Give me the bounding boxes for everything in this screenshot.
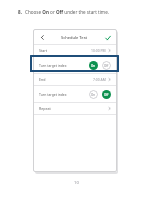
staticText: 10:00 PM (91, 48, 106, 53)
button[interactable]: Off (102, 61, 111, 70)
staticText: End (39, 77, 46, 82)
button[interactable]: Save (103, 33, 112, 42)
button[interactable]: Back (38, 33, 47, 42)
button[interactable]: On (89, 90, 98, 99)
staticText: On (91, 64, 96, 68)
button[interactable]: Off (102, 90, 111, 99)
staticText: 10 (74, 180, 79, 186)
button[interactable]: Repeat (34, 103, 116, 114)
staticText: Repeat (39, 106, 51, 111)
button[interactable]: End (34, 74, 116, 85)
staticText: Off (104, 64, 109, 68)
staticText: Schedule Test (61, 35, 88, 40)
staticText: Off (104, 93, 109, 97)
staticText: Turn target index (39, 92, 67, 97)
button[interactable]: Start (34, 45, 116, 56)
staticText: Start (39, 48, 48, 53)
staticText: On (91, 93, 96, 97)
staticText: 7:00 AM (93, 77, 106, 82)
button[interactable]: On (89, 61, 98, 70)
staticText: Turn target index (39, 63, 67, 68)
staticText: 8. (18, 9, 22, 15)
staticText: Choose On or Off under the start time. (25, 9, 109, 15)
